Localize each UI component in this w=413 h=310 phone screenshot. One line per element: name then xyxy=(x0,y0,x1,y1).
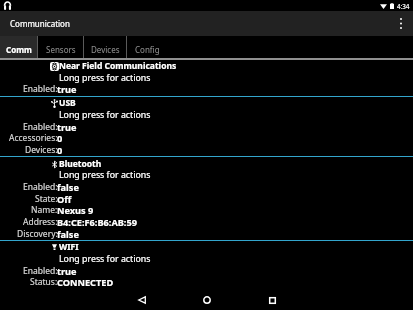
staticText: B4:CE:F6:B6:AB:59 xyxy=(57,216,137,228)
button[interactable]: Enabled: xyxy=(0,181,413,193)
staticText: 0 xyxy=(57,144,63,156)
staticText: Bluetooth xyxy=(59,158,102,170)
button[interactable]: WIFI xyxy=(0,241,413,253)
staticText: Enabled: xyxy=(23,265,58,277)
staticText: true xyxy=(57,121,77,133)
staticText: Near Field Communications xyxy=(59,60,177,72)
button[interactable]: Bluetooth xyxy=(0,158,413,170)
staticText: Address: xyxy=(23,216,58,228)
staticText: false xyxy=(57,228,79,240)
button[interactable]: Recents xyxy=(258,289,286,310)
button[interactable]: Back xyxy=(128,289,156,310)
staticText: USB xyxy=(59,97,76,109)
staticText: Config xyxy=(135,44,160,55)
button[interactable]: Config xyxy=(127,36,168,58)
staticText: Long press for actions xyxy=(59,253,151,265)
button[interactable]: Long press for actions xyxy=(0,109,413,121)
staticText: Name: xyxy=(31,204,58,216)
button[interactable]: State: xyxy=(0,193,413,205)
staticText: WIFI xyxy=(59,241,79,253)
staticText: Long press for actions xyxy=(59,72,151,84)
staticText: 4:34 xyxy=(397,2,410,10)
button[interactable]: Enabled: xyxy=(0,121,413,133)
staticText: Enabled: xyxy=(23,83,58,95)
staticText: Comm xyxy=(6,44,32,55)
button[interactable]: Devices: xyxy=(0,144,413,156)
staticText: Devices: xyxy=(25,144,58,156)
button[interactable]: Long press for actions xyxy=(0,72,413,84)
staticText: Long press for actions xyxy=(59,109,151,121)
staticText: Enabled: xyxy=(23,121,58,133)
button[interactable]: Status: xyxy=(0,276,413,288)
staticText: Enabled: xyxy=(23,181,58,193)
button[interactable]: Enabled: xyxy=(0,83,413,95)
staticText: true xyxy=(57,265,77,277)
button[interactable]: Discovery: xyxy=(0,228,413,240)
button[interactable]: Accessories: xyxy=(0,132,413,144)
button[interactable]: Near Field Communications xyxy=(0,60,413,72)
button[interactable]: Devices xyxy=(84,36,127,58)
staticText: true xyxy=(57,83,77,95)
button[interactable]: Sensors xyxy=(38,36,84,58)
staticText: Off xyxy=(57,193,72,205)
button[interactable]: USB xyxy=(0,97,413,109)
button[interactable]: Name: xyxy=(0,204,413,216)
staticText: Status: xyxy=(30,276,58,288)
staticText: Discovery: xyxy=(17,228,58,240)
staticText: Nexus 9 xyxy=(57,204,94,216)
staticText: CONNECTED xyxy=(57,276,114,288)
button[interactable]: Home xyxy=(193,289,221,310)
staticText: Communication xyxy=(10,18,70,29)
staticText: Long press for actions xyxy=(59,169,151,181)
button[interactable]: Address: xyxy=(0,216,413,228)
button[interactable]: Long press for actions xyxy=(0,169,413,181)
staticText: Sensors xyxy=(46,44,76,55)
button[interactable]: Long press for actions xyxy=(0,253,413,265)
staticText: false xyxy=(57,181,79,193)
button[interactable]: Comm xyxy=(0,36,38,58)
button[interactable]: Enabled: xyxy=(0,265,413,277)
staticText: Devices xyxy=(91,44,120,55)
staticText: State: xyxy=(35,193,58,205)
button[interactable]: More options xyxy=(389,11,413,36)
staticText: 0 xyxy=(57,132,63,144)
staticText: Accessories: xyxy=(9,132,58,144)
